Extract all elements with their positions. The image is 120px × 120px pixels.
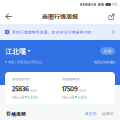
staticText: 本周 | 9月20日-9月26日: [8, 59, 42, 64]
staticText: 订阅: [104, 48, 112, 54]
staticText: 0.63%: [28, 95, 38, 99]
staticText: 本周挂牌均价: [62, 76, 80, 81]
staticText: 成交价: [85, 111, 97, 116]
button[interactable]: 添加行情趋势到桌面，实时关注行情最新动态: [0, 24, 120, 40]
button[interactable]: 订阅: [100, 47, 115, 55]
staticText: 挂牌价: [102, 111, 114, 116]
button[interactable]: 江北嘴: [5, 46, 31, 56]
button[interactable]: 成交价: [85, 111, 97, 116]
button[interactable]: 挂牌价: [102, 111, 114, 116]
button[interactable]: Back: [0, 9, 17, 24]
staticText: 添加行情趋势到桌面，实时关注行情最新动态: [12, 29, 92, 35]
staticText: 元/㎡: [79, 88, 86, 93]
staticText: 17509: [62, 84, 78, 93]
staticText: 本周成交均价: [12, 76, 30, 81]
staticText: 0.41%: [78, 95, 88, 99]
staticText: 环比上周: [62, 95, 74, 99]
staticText: 25836: [12, 84, 29, 93]
staticText: 环比上周: [12, 95, 24, 99]
staticText: 每周日消息通知: [94, 59, 115, 64]
staticText: 商圈行情周报: [42, 12, 78, 21]
staticText: 元/㎡: [30, 88, 37, 93]
staticText: 价格走势: [6, 110, 26, 117]
staticText: 100: [111, 2, 117, 6]
button[interactable]: Share: [103, 9, 120, 24]
staticText: 江北嘴: [5, 46, 26, 56]
